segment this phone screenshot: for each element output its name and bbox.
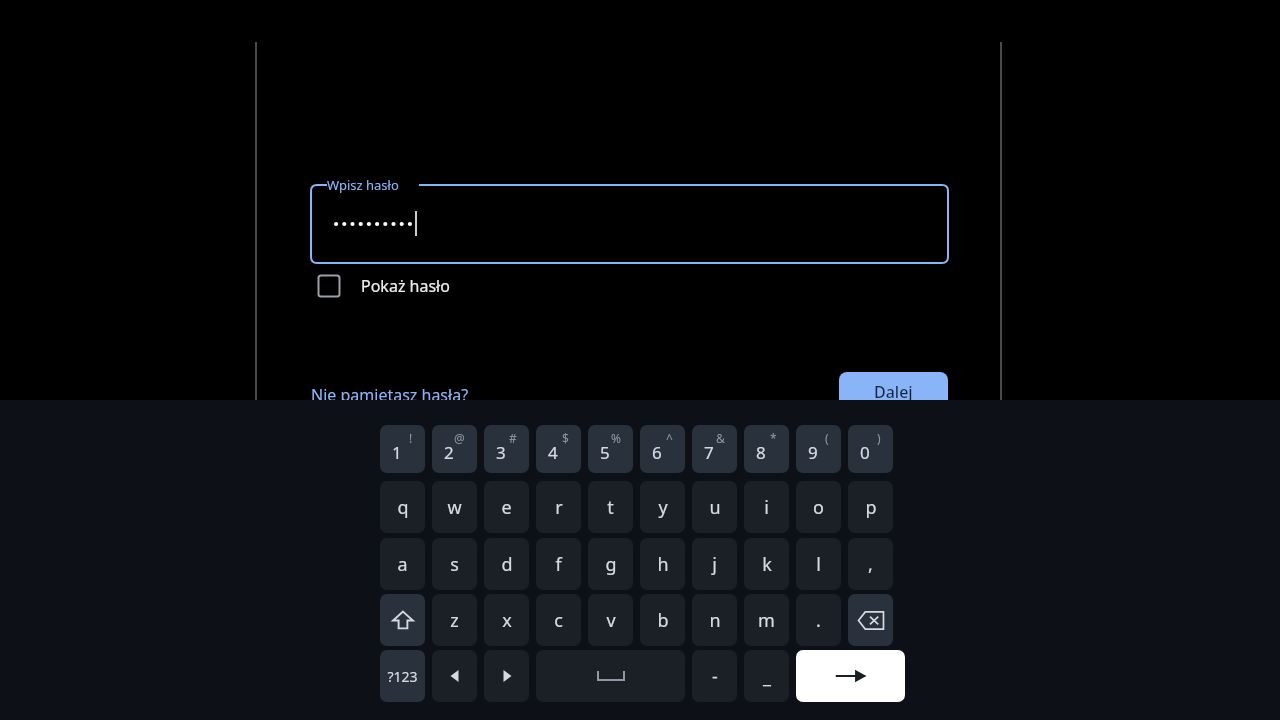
staticText: c — [554, 608, 563, 633]
button[interactable]: 3 — [484, 425, 529, 473]
staticText: o — [813, 495, 824, 520]
staticText: g — [605, 552, 617, 577]
button[interactable]: 7 — [692, 425, 737, 473]
button[interactable]: Space — [536, 650, 685, 702]
staticText: y — [658, 495, 668, 520]
button[interactable]: 2 — [432, 425, 477, 473]
button[interactable]: Enter — [796, 650, 905, 702]
staticText: 2 — [444, 441, 454, 464]
staticText: z — [450, 608, 459, 633]
staticText: $ — [562, 430, 569, 446]
staticText: Wpisz hasło — [327, 176, 399, 194]
staticText: e — [501, 495, 512, 520]
staticText: 4 — [548, 441, 558, 464]
staticText: - — [712, 664, 718, 689]
button[interactable]: 4 — [536, 425, 581, 473]
button[interactable]: f — [536, 538, 581, 590]
button[interactable]: i — [744, 481, 789, 533]
button[interactable]: k — [744, 538, 789, 590]
staticText: @ — [454, 430, 465, 446]
button[interactable]: Pokaż hasło — [311, 268, 450, 304]
button[interactable]: u — [692, 481, 737, 533]
button[interactable]: g — [588, 538, 633, 590]
staticText: j — [712, 552, 717, 577]
button[interactable]: Dalej — [839, 372, 948, 412]
button[interactable]: d — [484, 538, 529, 590]
button[interactable]: b — [640, 594, 685, 646]
staticText: p — [865, 495, 877, 520]
button[interactable]: c — [536, 594, 581, 646]
staticText: , — [868, 552, 873, 577]
staticText: 6 — [652, 441, 662, 464]
button[interactable]: Move cursor right — [484, 650, 529, 702]
button[interactable]: 6 — [640, 425, 685, 473]
staticText: Nie pamiętasz hasła? — [311, 384, 469, 406]
button[interactable]: l — [796, 538, 841, 590]
staticText: q — [397, 495, 409, 520]
button[interactable]: . — [796, 594, 841, 646]
staticText: 1 — [392, 441, 402, 464]
staticText: # — [509, 430, 517, 446]
button[interactable]: Nie pamiętasz hasła? — [311, 380, 469, 410]
staticText: n — [709, 608, 721, 633]
button[interactable]: o — [796, 481, 841, 533]
staticText: f — [555, 552, 562, 577]
staticText: h — [657, 552, 669, 577]
staticText: ^ — [666, 430, 673, 446]
button[interactable]: 8 — [744, 425, 789, 473]
button[interactable]: z — [432, 594, 477, 646]
button[interactable]: _ — [744, 650, 789, 702]
button[interactable]: m — [744, 594, 789, 646]
button[interactable]: e — [484, 481, 529, 533]
button[interactable]: 9 — [796, 425, 841, 473]
button[interactable]: 0 — [848, 425, 893, 473]
staticText: 9 — [808, 441, 818, 464]
staticText: m — [758, 608, 775, 633]
staticText: % — [611, 430, 621, 446]
staticText: v — [606, 608, 616, 633]
button[interactable]: h — [640, 538, 685, 590]
button[interactable]: p — [848, 481, 893, 533]
staticText: r — [555, 495, 563, 520]
button[interactable]: 5 — [588, 425, 633, 473]
staticText: x — [502, 608, 512, 633]
staticText: 0 — [860, 441, 870, 464]
button[interactable]: n — [692, 594, 737, 646]
staticText: * — [770, 430, 777, 446]
staticText: s — [450, 552, 459, 577]
button[interactable]: x — [484, 594, 529, 646]
button[interactable]: Backspace — [848, 594, 893, 646]
button[interactable]: - — [692, 650, 737, 702]
staticText: k — [762, 552, 772, 577]
staticText: . — [816, 608, 821, 633]
staticText: & — [716, 430, 725, 446]
staticText: w — [447, 495, 462, 520]
staticText: b — [657, 608, 669, 633]
staticText: t — [607, 495, 614, 520]
button[interactable]: Move cursor left — [432, 650, 477, 702]
staticText: d — [501, 552, 513, 577]
staticText: _ — [763, 664, 771, 689]
button[interactable]: s — [432, 538, 477, 590]
button[interactable]: q — [380, 481, 425, 533]
button[interactable]: ?123 — [380, 650, 425, 702]
staticText: ?123 — [387, 667, 418, 686]
staticText: ! — [409, 430, 413, 446]
staticText: 8 — [756, 441, 766, 464]
staticText: u — [709, 495, 721, 520]
staticText: 3 — [496, 441, 506, 464]
staticText: 7 — [704, 441, 714, 464]
button[interactable]: y — [640, 481, 685, 533]
button[interactable]: Shift — [380, 594, 425, 646]
button[interactable]: r — [536, 481, 581, 533]
button[interactable]: 1 — [380, 425, 425, 473]
button[interactable]: w — [432, 481, 477, 533]
button[interactable]: v — [588, 594, 633, 646]
button[interactable]: a — [380, 538, 425, 590]
staticText: i — [764, 495, 769, 520]
button[interactable]: j — [692, 538, 737, 590]
staticText: Pokaż hasło — [361, 275, 450, 297]
button[interactable]: , — [848, 538, 893, 590]
button[interactable]: t — [588, 481, 633, 533]
staticText: 5 — [600, 441, 610, 464]
